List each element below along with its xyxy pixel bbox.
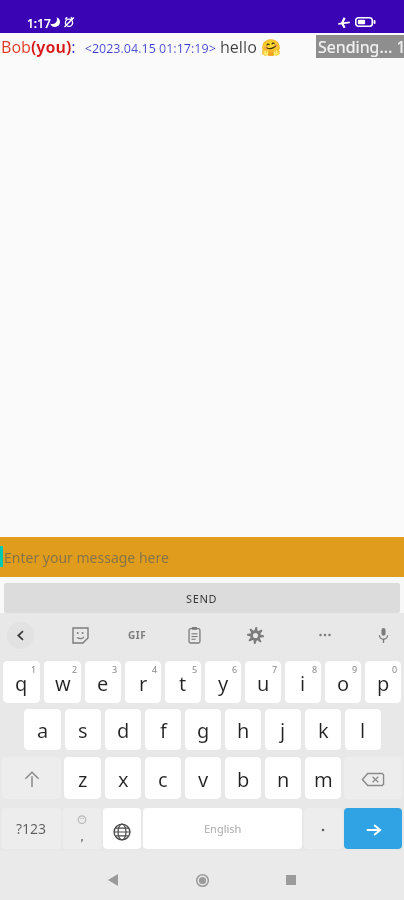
button[interactable]: Clipboard <box>177 618 211 652</box>
staticText: r <box>139 670 148 697</box>
button[interactable]: Emoji <box>63 808 101 849</box>
staticText: 1:17 <box>27 15 51 31</box>
staticText: y <box>218 670 229 697</box>
button[interactable]: b <box>225 757 261 799</box>
button[interactable]: Home <box>187 865 217 895</box>
staticText: GIF <box>128 628 147 642</box>
button[interactable]: x <box>105 757 141 799</box>
staticText: c <box>158 766 168 793</box>
staticText: e <box>97 670 109 697</box>
button[interactable]: p <box>365 661 401 703</box>
button[interactable]: Backspace <box>344 757 402 799</box>
button[interactable]: Change language <box>103 808 141 849</box>
button[interactable]: Sticker <box>63 618 97 652</box>
staticText: p <box>377 670 390 697</box>
staticText: j <box>280 717 286 744</box>
staticText: Sending... 1 <box>318 36 404 58</box>
button[interactable]: q <box>3 661 40 703</box>
button[interactable]: e <box>85 661 121 703</box>
staticText: i <box>300 670 306 697</box>
staticText: t <box>179 670 187 697</box>
staticText: 4 <box>152 663 158 675</box>
button[interactable]: Shift <box>2 757 61 799</box>
button[interactable]: g <box>185 709 221 750</box>
staticText: h <box>237 717 250 744</box>
button[interactable]: j <box>265 709 301 750</box>
staticText: 0 <box>392 663 398 675</box>
staticText: d <box>117 717 130 744</box>
button[interactable]: i <box>285 661 321 703</box>
button[interactable]: Recents <box>276 865 306 895</box>
button[interactable]: l <box>345 709 381 750</box>
staticText: s <box>78 717 88 744</box>
staticText: 8 <box>312 663 318 675</box>
staticText: m <box>314 766 333 793</box>
button[interactable]: SEND <box>4 583 400 613</box>
button[interactable]: Back <box>98 865 128 895</box>
staticText: 6 <box>232 663 238 675</box>
staticText: 1 <box>31 663 37 675</box>
button[interactable]: c <box>145 757 181 799</box>
staticText: 9 <box>352 663 358 675</box>
button[interactable]: h <box>225 709 261 750</box>
staticText: 7 <box>272 663 278 675</box>
staticText: 5 <box>192 663 198 675</box>
button[interactable]: y <box>205 661 241 703</box>
button[interactable]: n <box>265 757 301 799</box>
staticText: Bob(you): <2023.04.15 01:17:19> hello 🤗 <box>1 36 281 58</box>
staticText: x <box>118 766 129 793</box>
button[interactable]: z <box>64 757 101 799</box>
staticText: o <box>337 670 350 697</box>
staticText: SEND <box>186 591 218 606</box>
staticText: q <box>15 670 28 697</box>
button[interactable]: a <box>24 709 61 750</box>
button[interactable]: f <box>145 709 181 750</box>
staticText: ?123 <box>16 819 47 838</box>
staticText: v <box>198 766 209 793</box>
button[interactable]: English <box>143 808 302 849</box>
button[interactable]: Send <box>344 808 402 849</box>
button[interactable]: d <box>105 709 141 750</box>
staticText: g <box>197 717 210 744</box>
button[interactable]: u <box>245 661 281 703</box>
staticText: z <box>78 766 88 793</box>
button[interactable]: GIF <box>120 618 154 652</box>
button[interactable]: Back <box>7 622 34 649</box>
staticText: 3 <box>112 663 118 675</box>
staticText: English <box>204 821 242 836</box>
staticText: n <box>277 766 290 793</box>
staticText: f <box>160 717 167 744</box>
button[interactable]: More options <box>308 618 342 652</box>
button[interactable]: ?123 <box>2 808 61 849</box>
button[interactable]: Settings <box>238 618 272 652</box>
button[interactable]: t <box>165 661 201 703</box>
staticText: b <box>237 766 250 793</box>
staticText: w <box>55 670 71 697</box>
staticText: k <box>318 717 329 744</box>
button[interactable]: r <box>125 661 161 703</box>
button[interactable] <box>304 808 342 849</box>
button[interactable]: o <box>325 661 361 703</box>
button[interactable]: k <box>305 709 341 750</box>
staticText: 2 <box>72 663 78 675</box>
button[interactable]: w <box>44 661 81 703</box>
button[interactable]: v <box>185 757 221 799</box>
staticText: l <box>360 717 366 744</box>
staticText: Enter your message here <box>4 548 169 567</box>
staticText: u <box>257 670 270 697</box>
button[interactable]: Voice input <box>366 618 400 652</box>
button[interactable]: s <box>65 709 101 750</box>
button[interactable]: m <box>305 757 341 799</box>
staticText: a <box>37 717 49 744</box>
